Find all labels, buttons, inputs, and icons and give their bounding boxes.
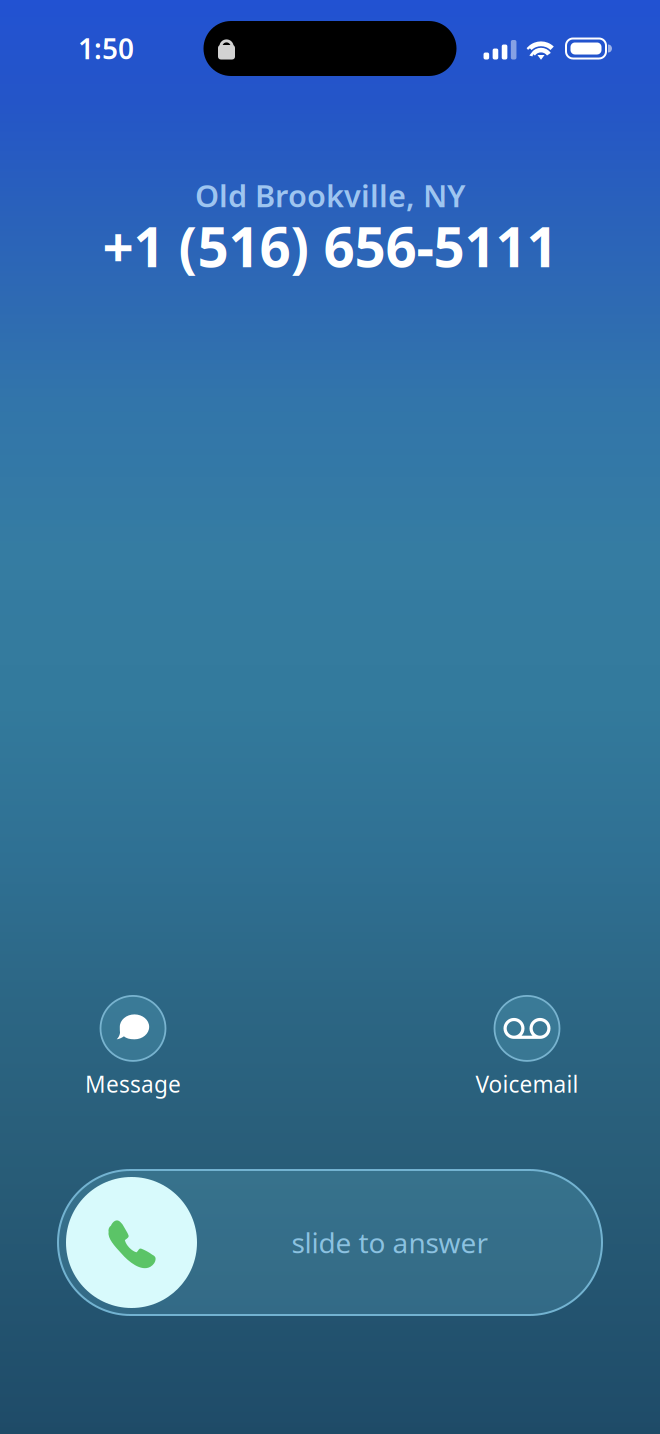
button[interactable]: Message: [48, 996, 218, 1099]
staticText: Message: [85, 1069, 181, 1099]
staticText: Old Brookville, NY: [195, 175, 465, 216]
staticText: 1:50: [78, 30, 134, 67]
staticText: Voicemail: [475, 1069, 578, 1099]
staticText: +1 (516) 656-5111: [102, 210, 557, 282]
button[interactable]: Voicemail: [442, 996, 612, 1099]
button[interactable]: slide to answer: [58, 1170, 602, 1315]
staticText: slide to answer: [291, 1224, 488, 1261]
